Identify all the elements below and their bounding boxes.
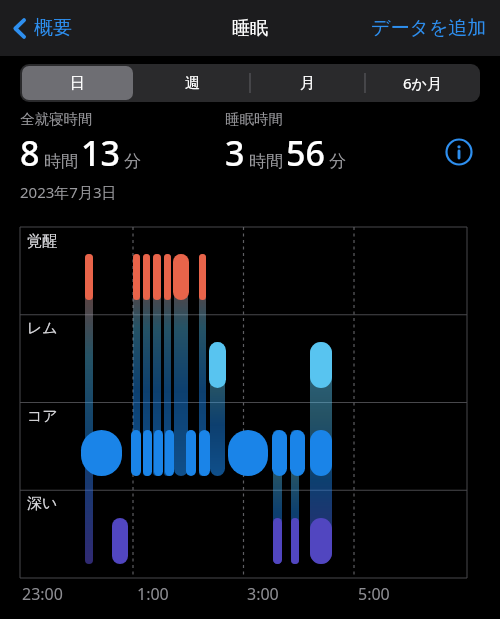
- staticText: 分: [124, 151, 141, 172]
- button[interactable]: 週: [137, 66, 248, 100]
- staticText: 56: [286, 130, 325, 176]
- staticText: 8: [20, 130, 40, 176]
- staticText: 日: [70, 74, 85, 93]
- staticText: レム: [27, 319, 58, 338]
- staticText: 深い: [27, 494, 58, 513]
- staticText: 13: [81, 130, 120, 176]
- staticText: コア: [27, 407, 58, 426]
- staticText: 週: [185, 74, 200, 93]
- button[interactable]: 6か月: [367, 66, 478, 100]
- button[interactable]: 詳しい情報: [443, 136, 475, 168]
- staticText: 1:00: [137, 583, 169, 605]
- staticText: 覚醒: [27, 232, 57, 251]
- staticText: 分: [329, 151, 346, 172]
- staticText: 睡眠時間: [225, 110, 283, 128]
- staticText: 3:00: [247, 583, 279, 605]
- staticText: 月: [300, 74, 315, 93]
- staticText: データを追加: [371, 16, 487, 40]
- button[interactable]: 概要: [8, 9, 77, 47]
- staticText: 時間: [44, 151, 78, 172]
- staticText: 概要: [34, 16, 72, 40]
- staticText: 5:00: [358, 583, 390, 605]
- staticText: 2023年7月3日: [20, 182, 117, 202]
- staticText: 全就寝時間: [20, 110, 93, 128]
- staticText: 3: [225, 130, 245, 176]
- button[interactable]: 月: [252, 66, 363, 100]
- staticText: 23:00: [22, 583, 63, 605]
- button[interactable]: データを追加: [366, 9, 492, 47]
- button[interactable]: 日: [22, 66, 133, 100]
- staticText: 6か月: [403, 73, 442, 93]
- staticText: 時間: [249, 151, 283, 172]
- staticText: 睡眠: [232, 17, 268, 40]
